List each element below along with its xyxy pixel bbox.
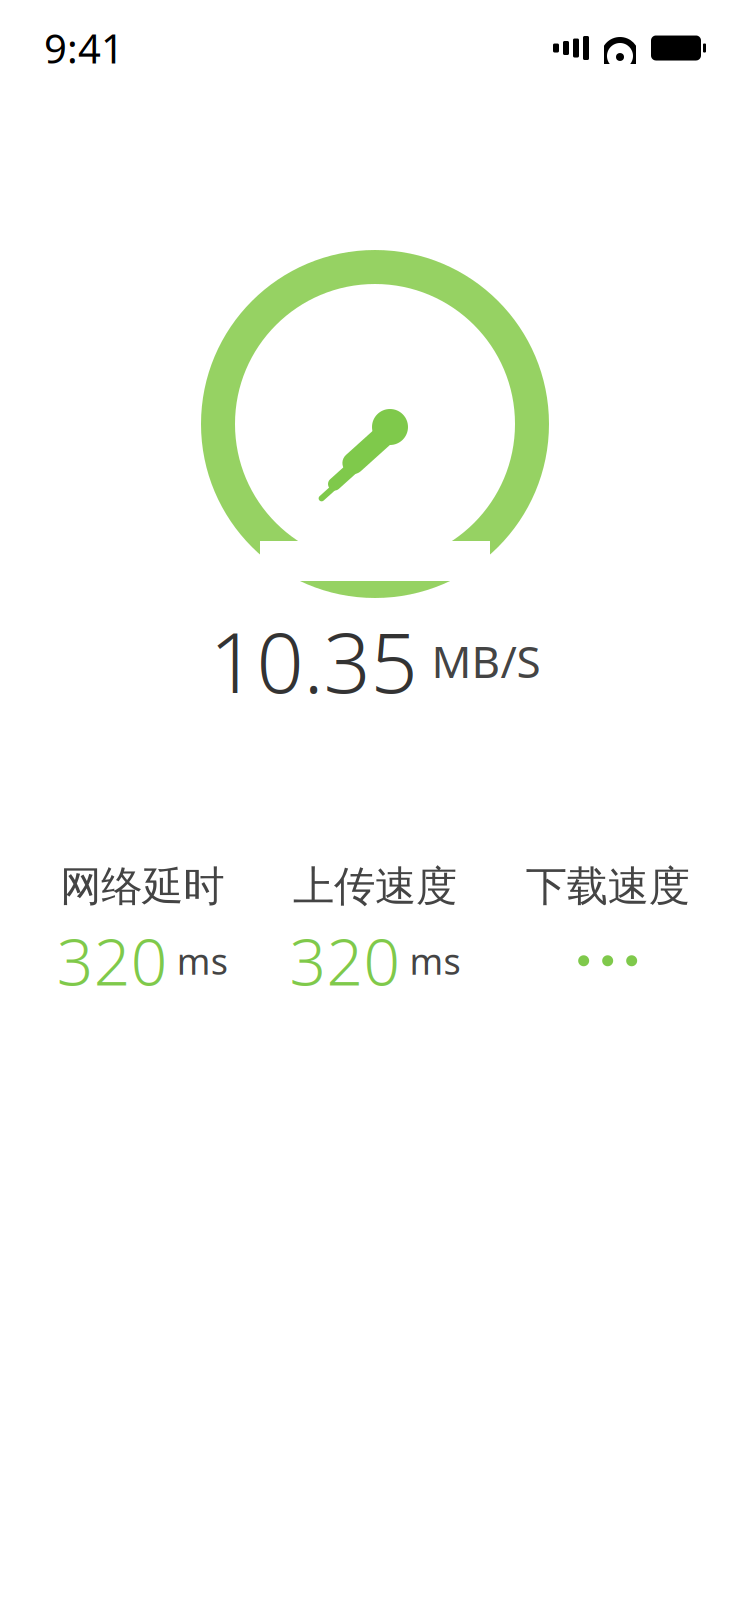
button[interactable]: 上传速度 [259,861,491,986]
staticText: 320 [57,918,168,1003]
staticText: 9:41 [44,21,124,74]
staticText: 网络延时 [60,861,224,912]
button[interactable]: 下载速度 [491,861,724,986]
button[interactable]: 网络延时 [26,861,259,986]
staticText: ms [177,937,228,985]
staticText: ms [409,937,460,985]
staticText: 10.35 [209,606,417,716]
staticText: 上传速度 [293,861,457,912]
staticText: 320 [289,918,400,1003]
staticText: 下载速度 [526,861,690,912]
staticText: MB/S [431,632,540,690]
